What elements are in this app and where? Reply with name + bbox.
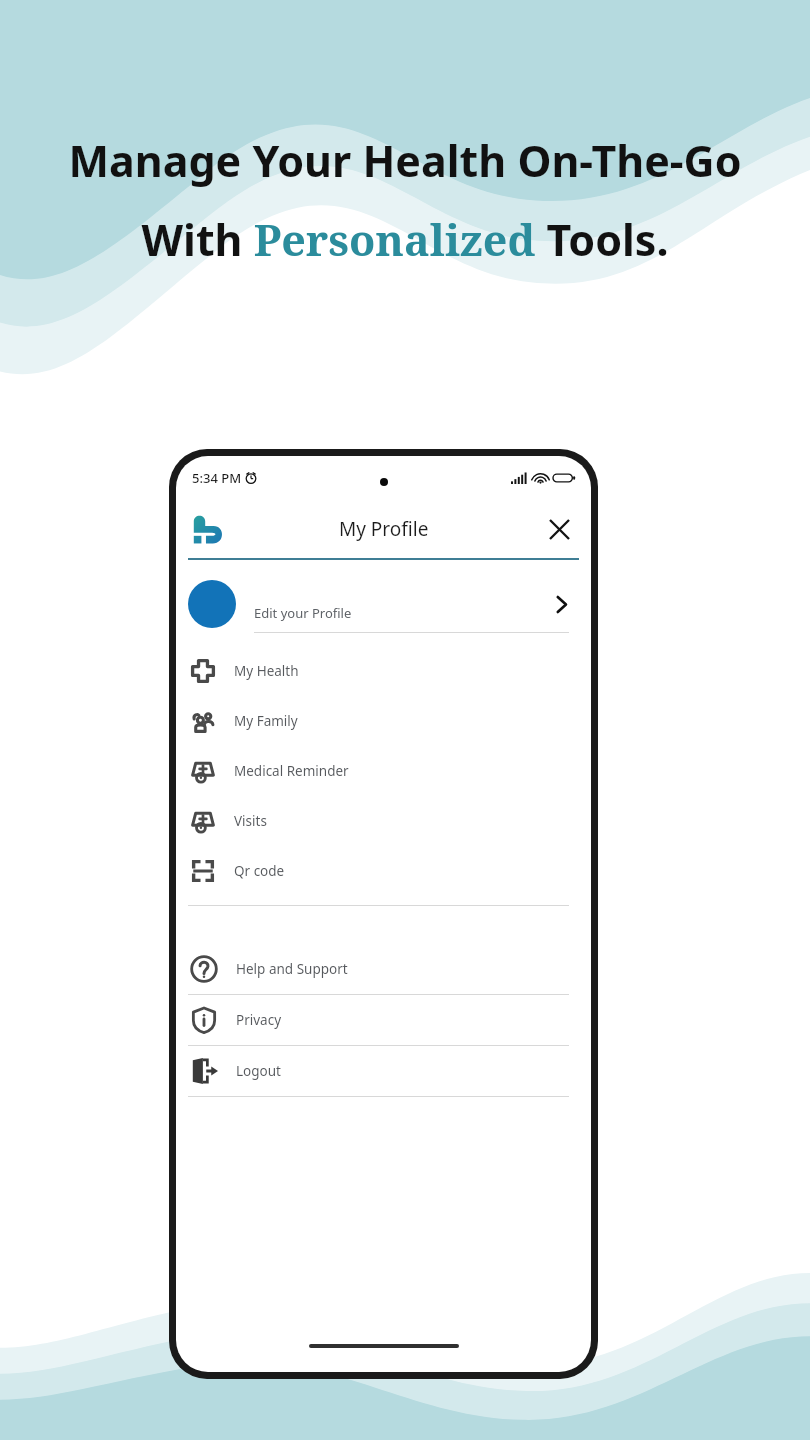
button[interactable]: Logout	[176, 1046, 591, 1096]
staticText: 5:34 PM	[192, 469, 242, 487]
button[interactable]: Edit your Profile	[176, 576, 591, 633]
button[interactable]: Visits	[176, 796, 591, 846]
button[interactable]: Qr code	[176, 846, 591, 896]
staticText: Medical Reminder	[234, 762, 349, 780]
button[interactable]: My Health	[176, 646, 591, 696]
staticText: Qr code	[234, 862, 285, 880]
staticText: Manage Your Health On-The-Go With Person…	[34, 131, 776, 269]
staticText: Visits	[234, 812, 267, 830]
button[interactable]: Medical Reminder	[176, 746, 591, 796]
staticText: Logout	[236, 1062, 281, 1080]
staticText: My Health	[234, 662, 299, 680]
button[interactable]: Privacy	[176, 995, 591, 1045]
staticText: Help and Support	[236, 960, 348, 978]
button[interactable]: Close	[541, 511, 577, 547]
staticText: My Profile	[339, 516, 429, 542]
staticText: My Family	[234, 712, 298, 730]
staticText: Edit your Profile	[254, 604, 352, 622]
other: App logo	[190, 510, 228, 548]
staticText: Privacy	[236, 1011, 282, 1029]
button[interactable]: My Family	[176, 696, 591, 746]
button[interactable]: Help and Support	[176, 944, 591, 994]
